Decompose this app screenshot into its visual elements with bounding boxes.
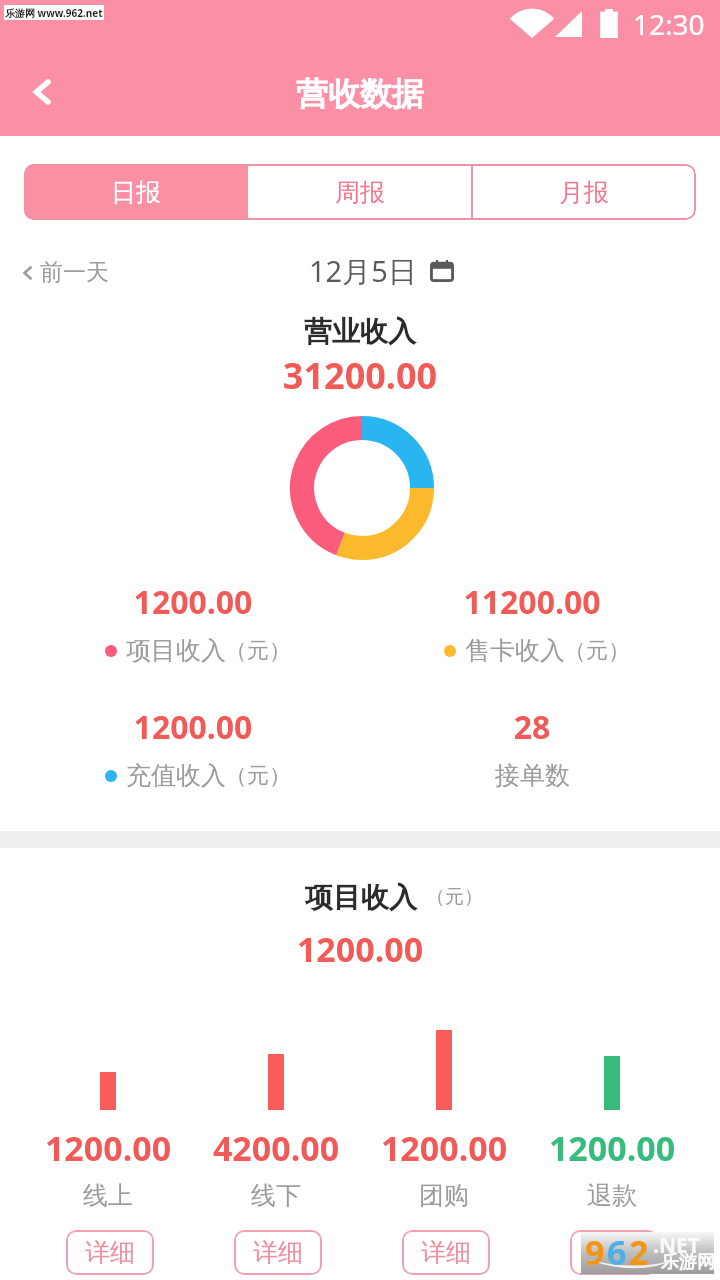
staticText: 团购 bbox=[360, 1180, 528, 1211]
button[interactable]: 11200.00 bbox=[364, 580, 700, 680]
staticText: 详细 bbox=[85, 1237, 135, 1268]
staticText: 1200.00 bbox=[24, 1125, 192, 1171]
staticText: 营收数据 bbox=[0, 74, 720, 114]
staticText: （元） bbox=[426, 885, 483, 909]
staticText: .NET bbox=[653, 1231, 700, 1260]
staticText: 充值收入 bbox=[126, 760, 226, 791]
staticText: 详细 bbox=[253, 1237, 303, 1268]
button[interactable]: 前一天 bbox=[20, 258, 109, 287]
staticText: 6 bbox=[607, 1229, 627, 1271]
staticText: 退款 bbox=[528, 1180, 696, 1211]
staticText: 前一天 bbox=[40, 258, 109, 287]
staticText: 12月5日 bbox=[309, 251, 417, 291]
staticText: 日报 bbox=[111, 177, 161, 208]
staticText: 9 bbox=[585, 1229, 605, 1271]
staticText: 2 bbox=[629, 1229, 649, 1271]
button[interactable]: Back bbox=[14, 64, 70, 120]
button[interactable]: 12月5日 bbox=[309, 251, 454, 291]
staticText: 31200.00 bbox=[0, 351, 720, 400]
button[interactable]: 周报 bbox=[248, 164, 472, 220]
staticText: 售卡收入 bbox=[465, 635, 565, 666]
button[interactable]: 1200.00 bbox=[25, 705, 361, 805]
staticText: 1200.00 bbox=[25, 580, 361, 624]
button[interactable]: 详细 bbox=[66, 1230, 154, 1275]
staticText: 12:30 bbox=[633, 5, 705, 43]
button[interactable]: 详细 bbox=[570, 1230, 658, 1275]
button[interactable]: 1200.00 bbox=[25, 580, 361, 680]
staticText: （元） bbox=[564, 637, 630, 665]
button[interactable]: 详细 bbox=[402, 1230, 490, 1275]
staticText: 1200.00 bbox=[0, 926, 720, 972]
button[interactable]: 日报 bbox=[24, 164, 248, 220]
staticText: 线上 bbox=[24, 1180, 192, 1211]
staticText: 1200.00 bbox=[360, 1125, 528, 1171]
staticText: 项目收入 bbox=[305, 880, 417, 915]
staticText: 营业收入 bbox=[0, 314, 720, 349]
button[interactable]: 月报 bbox=[472, 164, 696, 220]
staticText: 月报 bbox=[559, 177, 609, 208]
button[interactable]: 28 bbox=[364, 705, 700, 805]
staticText: （元） bbox=[225, 637, 291, 665]
staticText: 项目收入 bbox=[126, 635, 226, 666]
staticText: 1200.00 bbox=[25, 705, 361, 749]
staticText: 接单数 bbox=[495, 760, 570, 791]
staticText: 周报 bbox=[335, 177, 385, 208]
staticText: 乐游网 bbox=[661, 1251, 715, 1274]
staticText: 11200.00 bbox=[364, 580, 700, 624]
staticText: （元） bbox=[225, 762, 291, 790]
staticText: 乐游网 www.962.net bbox=[5, 6, 103, 20]
staticText: 线下 bbox=[192, 1180, 360, 1211]
button[interactable]: 详细 bbox=[234, 1230, 322, 1275]
staticText: 详细 bbox=[421, 1237, 471, 1268]
staticText: 4200.00 bbox=[192, 1125, 360, 1171]
staticText: 1200.00 bbox=[528, 1125, 696, 1171]
staticText: 详细 bbox=[589, 1237, 639, 1268]
staticText: 28 bbox=[364, 705, 700, 749]
